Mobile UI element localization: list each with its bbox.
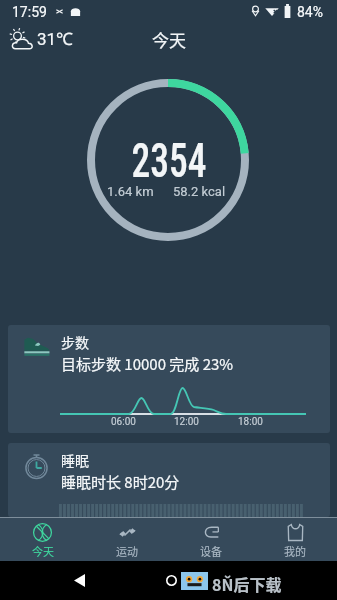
staticText: 31℃ bbox=[37, 27, 74, 50]
staticText: 2354 bbox=[132, 132, 206, 188]
staticText: 睡眠 bbox=[61, 450, 89, 470]
other: Back bbox=[74, 574, 85, 587]
staticText: 目标步数 10000 完成 23% bbox=[61, 353, 234, 375]
staticText: 84% bbox=[297, 4, 323, 20]
staticText: 步数 bbox=[61, 332, 89, 352]
button[interactable]: Exercise bbox=[85, 521, 169, 561]
staticText: 设备 bbox=[200, 543, 222, 559]
staticText: 58.2 kcal bbox=[173, 184, 226, 199]
staticText: 今天 bbox=[32, 543, 54, 559]
button[interactable]: Today bbox=[0, 521, 85, 561]
staticText: 12:00 bbox=[174, 416, 199, 428]
staticText: 06:00 bbox=[111, 416, 136, 428]
button[interactable]: 步数 bbox=[8, 325, 330, 433]
staticText: 18:00 bbox=[238, 416, 263, 428]
other: Home bbox=[166, 575, 177, 586]
button[interactable]: Mine bbox=[253, 521, 337, 561]
staticText: 8Ň后下载 bbox=[212, 572, 282, 595]
button[interactable]: 睡眠 bbox=[8, 443, 330, 517]
staticText: 1.64 km bbox=[107, 184, 154, 199]
button[interactable]: 31℃ bbox=[8, 27, 74, 50]
staticText: 17:59 bbox=[12, 4, 47, 20]
staticText: 运动 bbox=[116, 543, 138, 559]
staticText: 我的 bbox=[284, 543, 306, 559]
staticText: 睡眠时长 8时20分 bbox=[61, 471, 180, 493]
staticText: 今天 bbox=[152, 27, 186, 52]
button[interactable]: Device bbox=[169, 521, 253, 561]
